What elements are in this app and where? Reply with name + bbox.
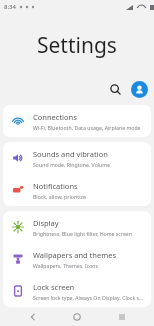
staticText: Wallpapers and themes	[33, 250, 117, 260]
button[interactable]: Wallpapers and themes	[3, 243, 151, 275]
button[interactable]: Connections	[3, 105, 151, 137]
staticText: Lock screen	[33, 282, 75, 292]
button[interactable]: Recents	[110, 307, 134, 326]
button[interactable]: Display	[3, 211, 151, 243]
staticText: 8:34	[4, 3, 16, 11]
staticText: Wallpapers, Themes, Icons	[33, 262, 98, 269]
staticText: Brightness, Blue light filter, Home scre…	[33, 230, 132, 237]
staticText: Display	[33, 218, 59, 228]
staticText: Sounds and vibration	[33, 149, 108, 159]
staticText: Settings	[37, 31, 117, 60]
button[interactable]: Home	[65, 307, 89, 326]
staticText: Wi-Fi, Bluetooth, Data usage, Airplane m…	[33, 124, 141, 131]
button[interactable]: Back	[21, 307, 45, 326]
button[interactable]: Sounds and vibration	[3, 142, 151, 174]
staticText: Notifications	[33, 181, 78, 191]
button[interactable]: Lock screen	[3, 275, 151, 307]
staticText: Screen lock type, Always On Display, Clo…	[33, 294, 145, 301]
staticText: Sound mode, Ringtone, Volume	[33, 161, 111, 168]
button[interactable]: Notifications	[3, 174, 151, 206]
staticText: Block, allow, prioritize	[33, 193, 86, 200]
staticText: Connections	[33, 112, 77, 122]
button[interactable]: Account	[131, 81, 148, 98]
button[interactable]: Search	[105, 79, 125, 99]
